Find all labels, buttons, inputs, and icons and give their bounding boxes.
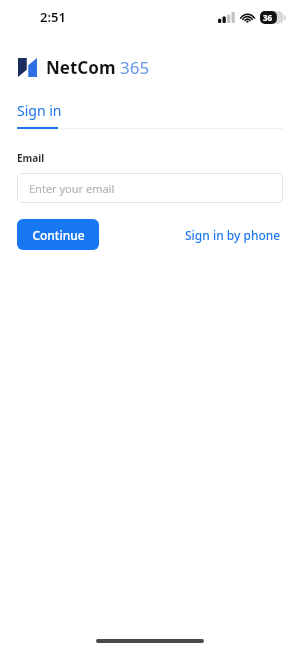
button[interactable]: Enter your email [17, 173, 283, 203]
other: Home indicator [96, 639, 204, 643]
button[interactable]: Sign in [17, 101, 62, 129]
button[interactable]: Sign in by phone [183, 221, 283, 249]
staticText: Enter your email [29, 181, 115, 196]
staticText: Sign in [17, 101, 62, 120]
staticText: 2:51 [40, 8, 66, 26]
staticText: Email [17, 151, 45, 165]
staticText: Sign in by phone [185, 227, 281, 243]
staticText: NetCom [46, 56, 116, 79]
staticText: 36 [263, 12, 273, 23]
button[interactable]: Continue [17, 219, 99, 250]
button[interactable]: NetCom [18, 56, 300, 79]
staticText: 365 [120, 56, 150, 79]
staticText: Continue [32, 227, 85, 243]
